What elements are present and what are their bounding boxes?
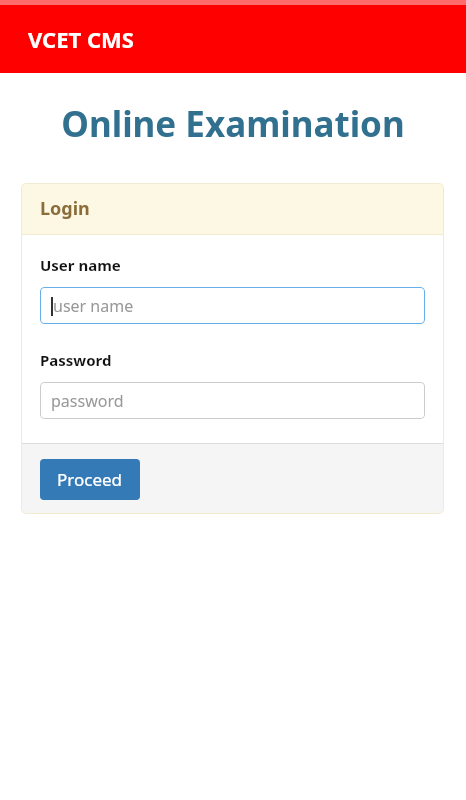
button[interactable]: Password field — [40, 382, 425, 419]
staticText: Password — [40, 350, 112, 370]
staticText: Login — [40, 196, 90, 221]
button[interactable]: Proceed — [40, 459, 140, 500]
staticText: password — [51, 390, 124, 412]
button[interactable]: User name field — [40, 287, 425, 324]
staticText: Proceed — [57, 468, 123, 491]
staticText: user name — [53, 295, 134, 317]
staticText: User name — [40, 255, 121, 275]
staticText: VCET CMS — [28, 24, 134, 54]
staticText: Online Examination — [0, 100, 466, 148]
